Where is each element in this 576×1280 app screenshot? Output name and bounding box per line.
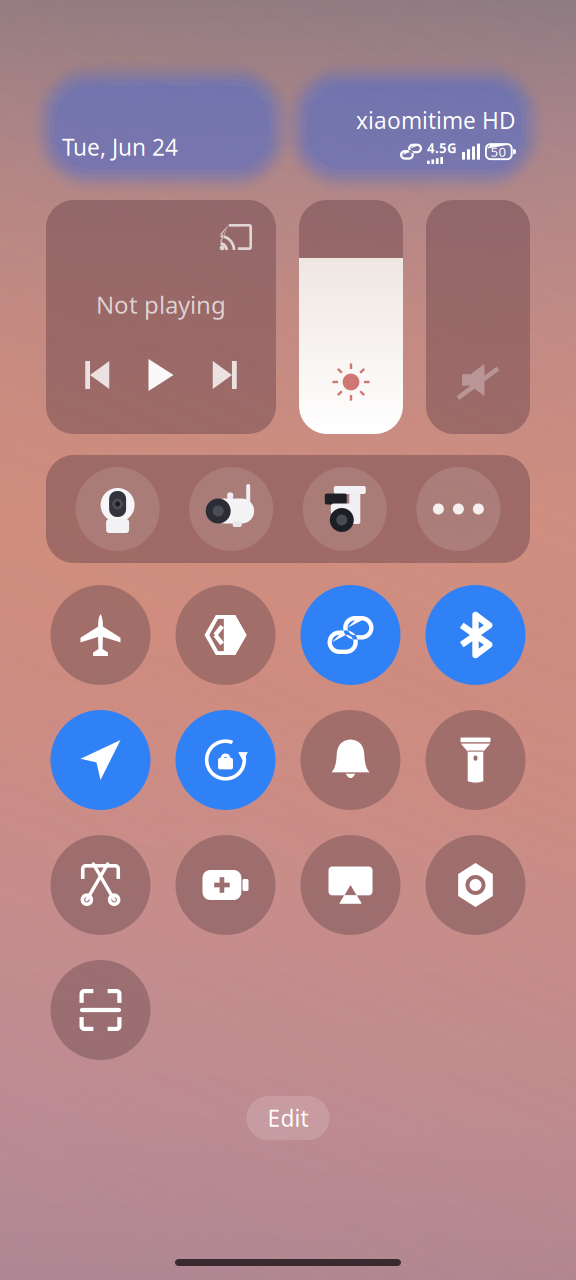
button[interactable]: Bluetooth	[425, 585, 525, 685]
button[interactable]: PTZ camera	[303, 467, 387, 551]
button[interactable]: Location	[50, 710, 150, 810]
button[interactable]: More devices	[416, 467, 500, 551]
staticText: Tue, Jun 24	[62, 132, 178, 162]
staticText: 4.5G	[427, 139, 457, 157]
button[interactable]: Airplane mode	[50, 585, 150, 685]
button[interactable]: Outdoor camera	[189, 467, 273, 551]
button[interactable]: Brightness	[299, 200, 403, 434]
staticText: xiaomitime HD	[356, 105, 516, 135]
button[interactable]: Ring mode	[300, 710, 400, 810]
button[interactable]: Edit	[246, 1096, 329, 1140]
button[interactable]: Indoor camera	[76, 467, 160, 551]
button[interactable]: Battery saver	[175, 835, 275, 935]
staticText: Edit	[267, 1103, 308, 1133]
button[interactable]: Media player	[46, 200, 276, 434]
staticText: Not playing	[96, 289, 226, 320]
button[interactable]: Screenshot	[50, 835, 150, 935]
button[interactable]: Settings	[425, 835, 525, 935]
button[interactable]: Scan code	[50, 960, 150, 1060]
button[interactable]: Volume, muted	[426, 200, 530, 434]
button[interactable]: Flashlight	[425, 710, 525, 810]
button[interactable]: Rotation lock	[175, 710, 275, 810]
button[interactable]: Mobile data	[300, 585, 400, 685]
button[interactable]: Data saver	[175, 585, 275, 685]
button[interactable]: Cast	[300, 835, 400, 935]
staticText: 50	[490, 143, 506, 160]
